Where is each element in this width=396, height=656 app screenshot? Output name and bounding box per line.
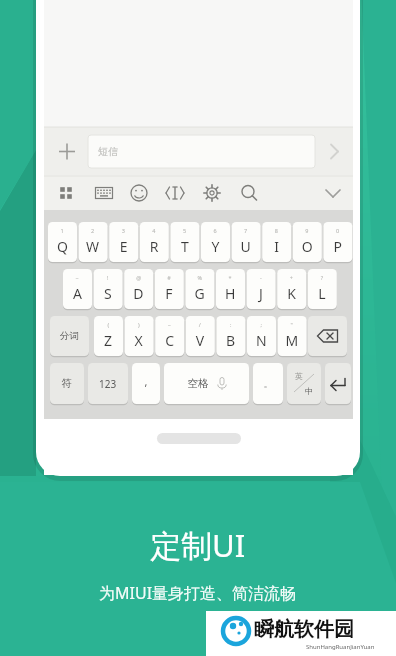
button[interactable]: Custom UI promo screen: [0, 0, 396, 656]
